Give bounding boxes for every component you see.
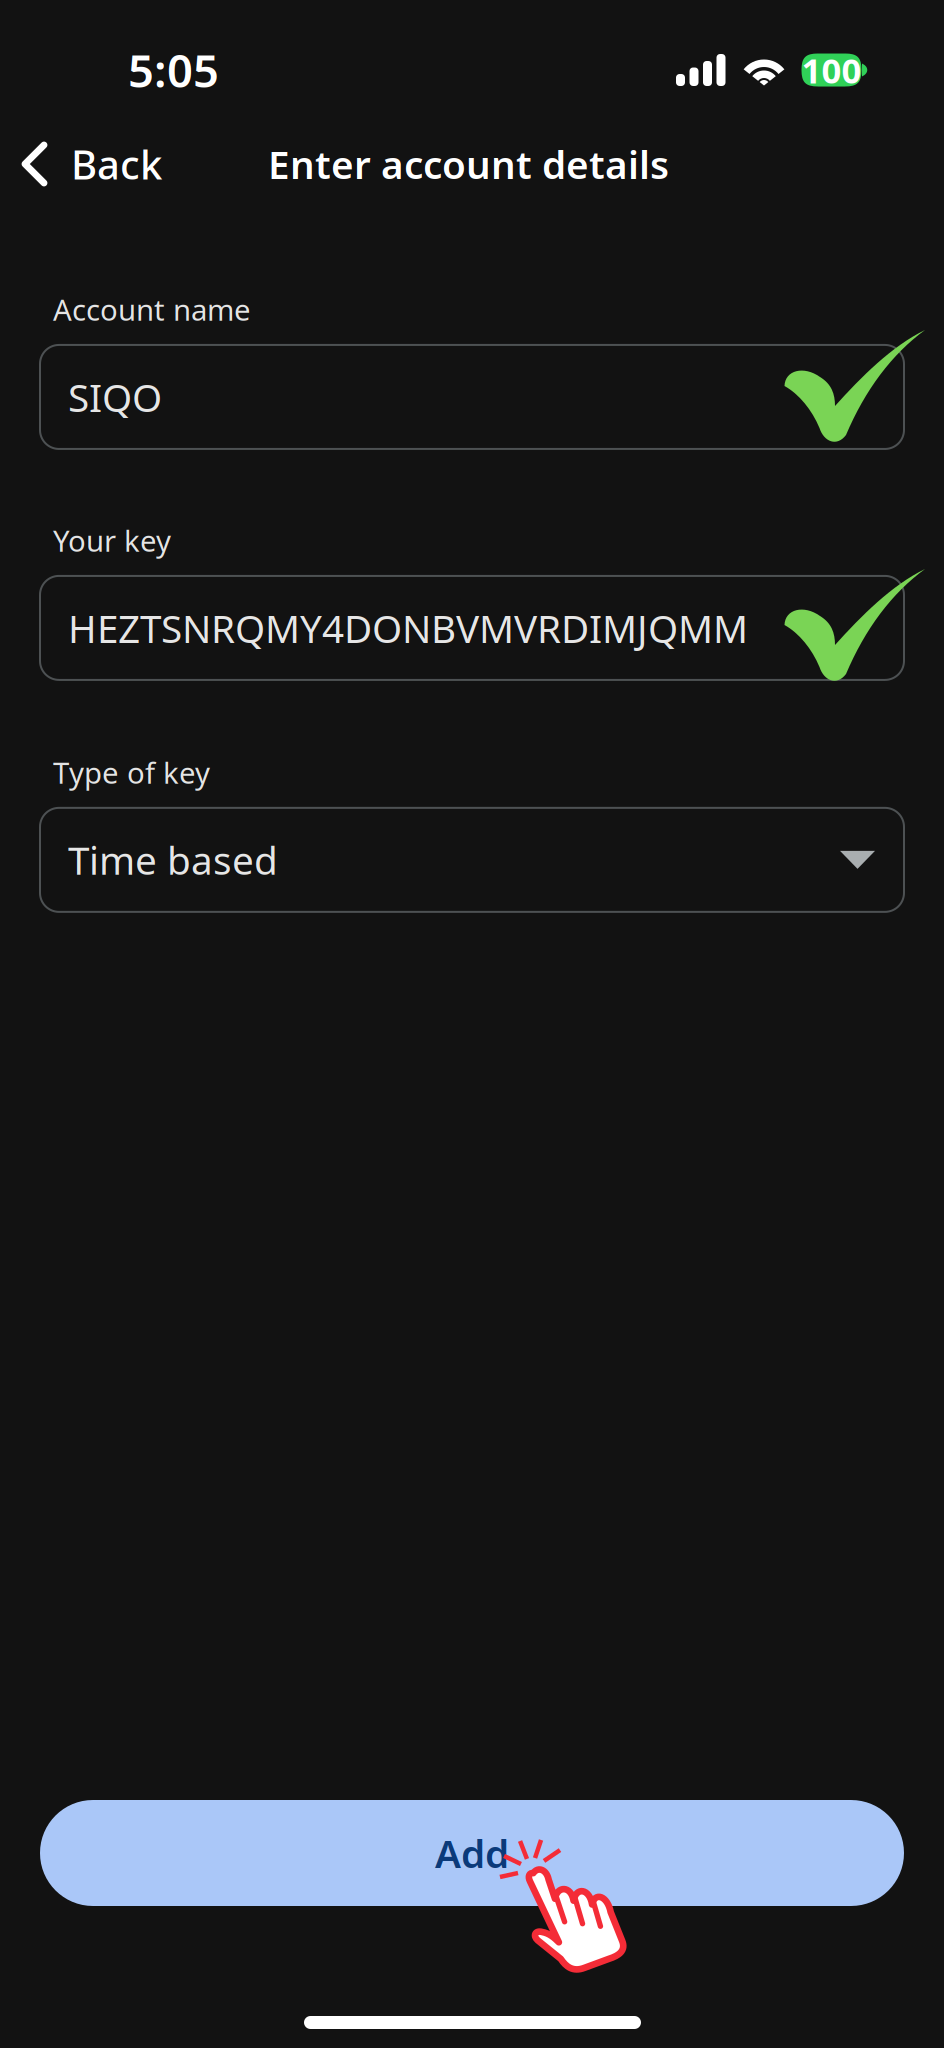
- button[interactable]: Account name: SIQO: [40, 345, 904, 449]
- staticText: Back: [71, 137, 162, 190]
- staticText: Type of key: [53, 753, 210, 792]
- staticText: Account name: [53, 290, 251, 329]
- button[interactable]: Your key: HEZTSNRQMY4DONBVMVRDIMJQMM: [40, 576, 904, 680]
- staticText: Add: [435, 1827, 509, 1879]
- staticText: 5:05: [128, 40, 219, 100]
- staticText: SIQO: [68, 371, 162, 423]
- staticText: 100: [801, 47, 861, 93]
- staticText: Your key: [53, 521, 171, 560]
- button[interactable]: Add: [40, 1800, 904, 1906]
- staticText: Time based: [68, 834, 278, 885]
- staticText: Enter account details: [268, 138, 669, 190]
- button[interactable]: Type of key: Time based: [40, 808, 904, 912]
- button[interactable]: Back: [0, 118, 184, 210]
- staticText: HEZTSNRQMY4DONBVMVRDIMJQMM: [68, 602, 748, 653]
